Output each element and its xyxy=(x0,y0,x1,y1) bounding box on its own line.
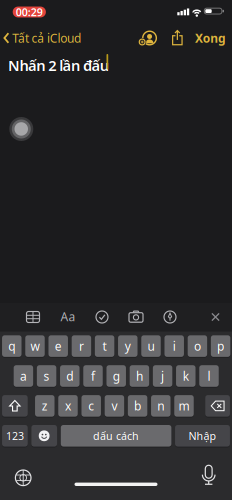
button[interactable]: Aa xyxy=(60,309,75,325)
staticText: Tất cả iCloud xyxy=(12,30,81,46)
button[interactable]: o xyxy=(188,335,207,357)
button[interactable]: 123 xyxy=(2,425,28,447)
button[interactable]: v xyxy=(105,395,124,417)
staticText: c xyxy=(88,398,94,414)
staticText: x xyxy=(65,398,71,414)
button[interactable]: Xong xyxy=(195,30,226,46)
button[interactable]: Camera xyxy=(128,310,143,323)
button[interactable]: Delete xyxy=(205,395,230,417)
button[interactable]: a xyxy=(14,365,33,387)
button[interactable]: dấu cách xyxy=(61,425,171,447)
staticText: t xyxy=(103,338,107,354)
button[interactable]: Next Keyboard xyxy=(15,469,32,486)
button[interactable]: Emoji xyxy=(31,425,57,447)
staticText: a xyxy=(20,368,27,384)
button[interactable]: x xyxy=(58,395,78,417)
staticText: m xyxy=(178,398,189,414)
staticText: w xyxy=(30,338,39,354)
button[interactable]: g xyxy=(106,365,126,387)
button[interactable]: n xyxy=(151,395,171,417)
staticText: Xong xyxy=(195,30,226,46)
staticText: 00:29 xyxy=(16,5,43,19)
staticText: g xyxy=(113,368,120,384)
button[interactable]: j xyxy=(153,365,172,387)
button[interactable]: z xyxy=(35,395,54,417)
button[interactable]: Tất cả iCloud xyxy=(3,30,81,45)
staticText: v xyxy=(111,398,117,414)
button[interactable]: m xyxy=(174,395,194,417)
button[interactable]: Recording 00:29 xyxy=(13,6,46,17)
staticText: dấu cách xyxy=(93,429,139,443)
button[interactable]: d xyxy=(60,365,79,387)
staticText: f xyxy=(91,368,95,384)
staticText: n xyxy=(157,398,164,414)
button[interactable]: Markup xyxy=(163,310,176,323)
button[interactable]: r xyxy=(72,335,91,357)
staticText: l xyxy=(207,368,210,384)
staticText: q xyxy=(8,338,15,354)
button[interactable]: p xyxy=(211,335,230,357)
staticText: z xyxy=(42,398,48,414)
button[interactable]: t xyxy=(95,335,114,357)
button[interactable]: c xyxy=(81,395,101,417)
button[interactable]: h xyxy=(130,365,149,387)
staticText: y xyxy=(125,338,131,354)
button[interactable]: Nhập xyxy=(175,425,230,447)
button[interactable]: q xyxy=(2,335,22,357)
staticText: p xyxy=(217,338,224,354)
staticText: r xyxy=(79,338,84,354)
staticText: i xyxy=(173,338,176,354)
button[interactable]: Add People xyxy=(138,31,157,47)
staticText: h xyxy=(136,368,143,384)
button[interactable]: Dictation xyxy=(200,465,217,485)
staticText: Nhập xyxy=(188,429,216,443)
staticText: Aa xyxy=(60,309,75,325)
button[interactable]: Shift xyxy=(2,395,28,417)
staticText: u xyxy=(147,338,154,354)
button[interactable]: Share xyxy=(171,29,184,46)
staticText: k xyxy=(183,368,189,384)
button[interactable]: w xyxy=(25,335,45,357)
button[interactable]: u xyxy=(141,335,161,357)
staticText: s xyxy=(44,368,50,384)
button[interactable]: f xyxy=(83,365,103,387)
button[interactable]: s xyxy=(37,365,56,387)
staticText: e xyxy=(55,338,62,354)
button[interactable]: b xyxy=(128,395,147,417)
button[interactable]: l xyxy=(199,365,219,387)
button[interactable]: i xyxy=(164,335,184,357)
button[interactable]: e xyxy=(48,335,68,357)
staticText: b xyxy=(134,398,141,414)
button[interactable]: k xyxy=(176,365,196,387)
button[interactable]: Insert Table xyxy=(26,311,40,323)
staticText: 123 xyxy=(6,429,24,443)
button[interactable]: Dismiss Keyboard xyxy=(211,313,220,321)
button[interactable]: Checklist xyxy=(95,310,108,323)
staticText: Nhấn 2 lần đấu xyxy=(8,55,109,75)
staticText: j xyxy=(161,368,164,384)
button[interactable]: y xyxy=(118,335,137,357)
staticText: o xyxy=(194,338,201,354)
staticText: d xyxy=(66,368,73,384)
